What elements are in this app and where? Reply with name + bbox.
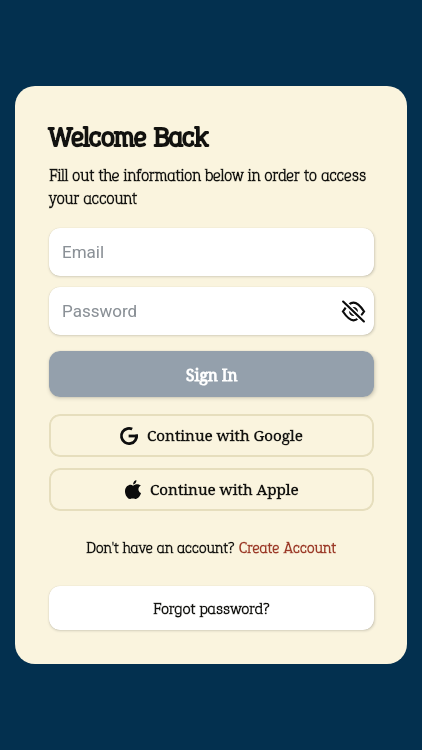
staticText: Continue with Apple xyxy=(150,479,299,500)
staticText: Create Account xyxy=(239,537,337,558)
staticText: Don't have an account? xyxy=(86,537,239,558)
button[interactable]: Sign In xyxy=(49,351,374,397)
staticText: Continue with Google xyxy=(147,425,303,446)
staticText: Sign In xyxy=(186,364,238,385)
staticText: Forgot password? xyxy=(153,598,270,619)
staticText: Welcome Back xyxy=(49,119,209,155)
staticText: Password xyxy=(62,301,138,321)
button[interactable]: Continue with Google xyxy=(49,414,374,457)
button[interactable]: Forgot password? xyxy=(49,586,374,630)
staticText: Fill out the information below in order … xyxy=(49,165,374,210)
staticText: Email xyxy=(62,242,105,262)
button[interactable]: Show password xyxy=(337,295,369,327)
button[interactable]: Email xyxy=(49,228,374,276)
button[interactable]: Password xyxy=(49,287,374,335)
button[interactable]: Create Account xyxy=(239,537,337,558)
button[interactable]: Continue with Apple xyxy=(49,468,374,511)
staticText: Welcome Back xyxy=(49,119,209,155)
